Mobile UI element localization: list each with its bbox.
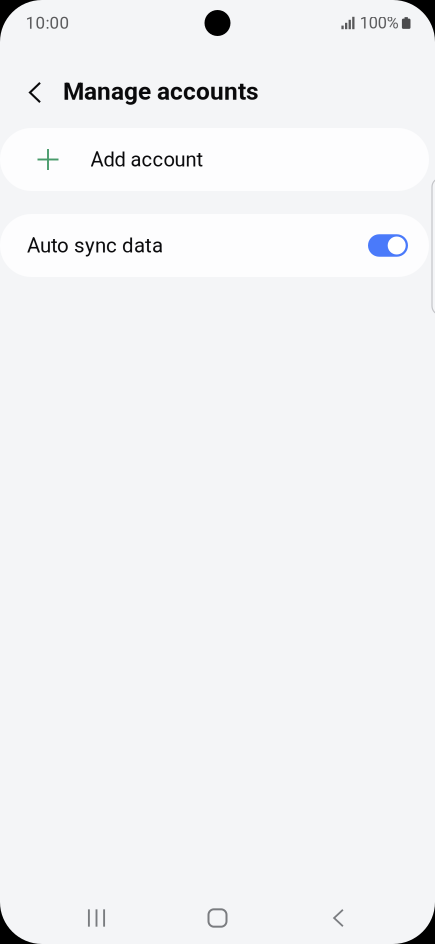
button[interactable]: Back — [278, 890, 399, 944]
button[interactable]: Auto sync data — [0, 214, 435, 277]
button[interactable]: Recent apps — [36, 890, 157, 944]
staticText: 10:00 — [25, 13, 69, 33]
button[interactable]: Back — [12, 66, 58, 118]
staticText: Add account — [90, 148, 203, 171]
staticText: 100% — [360, 13, 399, 33]
staticText: Auto sync data — [27, 233, 163, 257]
button[interactable]: Home — [157, 890, 278, 944]
staticText: Manage accounts — [63, 77, 259, 106]
button[interactable]: Auto sync data, on — [368, 225, 408, 265]
button[interactable]: Add account — [0, 128, 435, 191]
